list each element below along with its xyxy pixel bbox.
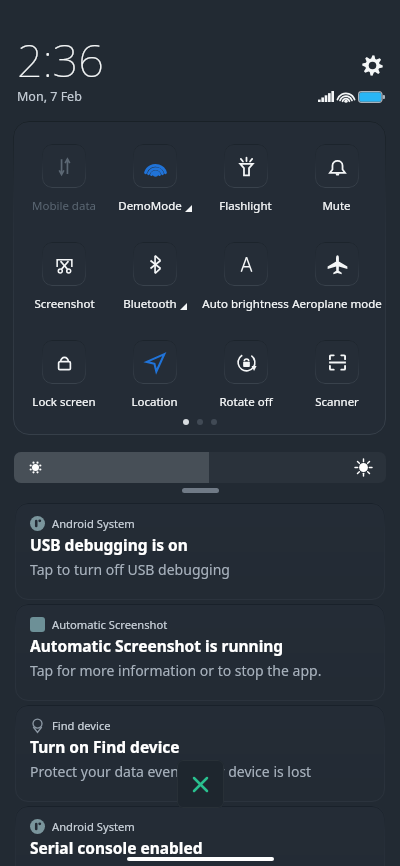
button[interactable]: Android System <box>15 503 385 600</box>
staticText: Tap to turn off USB debugging <box>30 560 230 579</box>
button[interactable]: Find device <box>15 705 385 802</box>
button[interactable]: Bluetooth <box>109 242 200 312</box>
staticText: Tap for more information or to stop the … <box>30 661 322 680</box>
button[interactable]: Auto brightness <box>200 242 291 312</box>
staticText: DemoMode <box>118 198 182 214</box>
staticText: Automatic Screenshot is running <box>30 635 284 656</box>
button[interactable] <box>14 452 386 483</box>
staticText: Rotate off <box>219 394 273 410</box>
staticText: Lock screen <box>32 394 96 410</box>
staticText: Find device <box>52 718 111 733</box>
staticText: Mute <box>322 198 351 214</box>
button[interactable]: Aeroplane mode <box>291 242 382 312</box>
staticText: Protect your data even if your device is… <box>30 762 312 781</box>
staticText: Mon, 7 Feb <box>17 88 82 105</box>
button[interactable]: Mobile data <box>19 144 109 214</box>
button[interactable]: Android System <box>15 806 385 866</box>
button[interactable]: Lock screen <box>19 340 109 410</box>
staticText: Location <box>131 394 178 410</box>
staticText: Bluetooth <box>123 296 177 312</box>
staticText: Turn on Find device <box>30 736 180 757</box>
staticText: Auto brightness <box>202 296 289 312</box>
staticText: Screenshot <box>34 296 95 312</box>
button[interactable]: Automatic Screenshot <box>15 604 385 701</box>
button[interactable]: Rotate off <box>200 340 291 410</box>
staticText: Android System <box>52 516 135 531</box>
staticText: Aeroplane mode <box>292 296 382 312</box>
staticText: Serial console enabled <box>30 837 203 858</box>
staticText: Mobile data <box>32 198 96 214</box>
button[interactable]: Scanner <box>291 340 382 410</box>
button[interactable]: DemoMode <box>109 144 200 214</box>
staticText: 2:36 <box>17 29 104 90</box>
button[interactable]: Settings <box>360 53 385 78</box>
button[interactable]: Dismiss <box>177 760 224 808</box>
button[interactable]: Screenshot <box>19 242 109 312</box>
staticText: USB debugging is on <box>30 534 188 555</box>
staticText: Flashlight <box>219 198 272 214</box>
staticText: Android System <box>52 819 135 834</box>
button[interactable]: Flashlight <box>200 144 291 214</box>
staticText: Scanner <box>315 394 359 410</box>
staticText: Automatic Screenshot <box>52 617 168 632</box>
button[interactable]: Mute <box>291 144 382 214</box>
button[interactable]: Location <box>109 340 200 410</box>
